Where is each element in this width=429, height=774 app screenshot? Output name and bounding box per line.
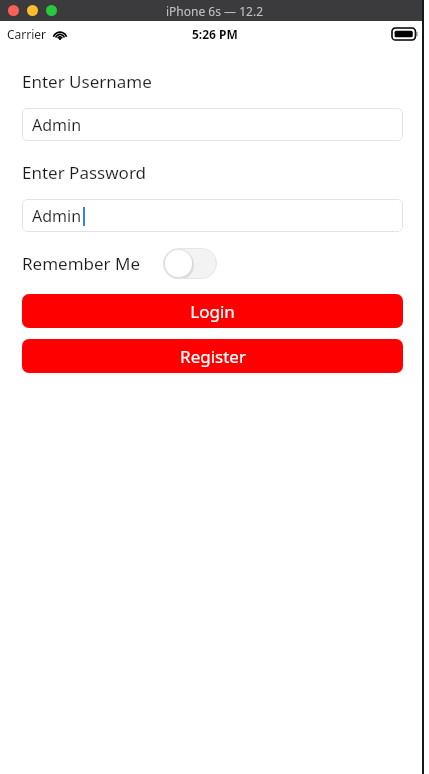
staticText: iPhone 6s — 12.2	[166, 3, 263, 19]
button[interactable]: Register	[22, 339, 403, 373]
staticText: Admin	[32, 114, 82, 136]
button[interactable]: Admin	[22, 108, 403, 141]
button[interactable]: Minimize	[27, 5, 38, 16]
staticText: Remember Me	[22, 252, 141, 275]
staticText: Carrier	[7, 26, 47, 42]
staticText: Admin	[32, 205, 82, 227]
button[interactable]: Login	[22, 294, 403, 328]
staticText: Enter Password	[22, 161, 147, 184]
staticText: Login	[190, 300, 235, 323]
button[interactable]: Admin	[22, 199, 403, 232]
staticText: Register	[180, 345, 246, 368]
button[interactable]: Remember Me toggle	[163, 248, 217, 279]
staticText: 5:26 PM	[192, 26, 238, 42]
staticText: Enter Username	[22, 70, 152, 93]
button[interactable]: Maximize	[46, 5, 57, 16]
button[interactable]: Close	[8, 5, 19, 16]
